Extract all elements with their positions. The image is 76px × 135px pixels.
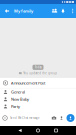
button[interactable]: Party <box>0 103 76 110</box>
staticText: You updated the group <box>23 71 57 75</box>
button[interactable]: Members <box>50 4 59 18</box>
button[interactable]: Voice message <box>58 110 65 126</box>
button[interactable]: General <box>0 88 76 96</box>
button[interactable]: Announcement Post <box>0 78 76 88</box>
staticText: My family <box>14 8 33 14</box>
button[interactable]: Notifications <box>59 4 67 18</box>
button[interactable]: Recents <box>50 126 62 135</box>
button[interactable]: Emoji <box>0 110 10 126</box>
staticText: General <box>11 89 25 95</box>
button[interactable]: More options <box>67 4 76 18</box>
button[interactable]: Back <box>0 4 14 18</box>
staticText: Announcement Post <box>11 80 45 86</box>
button[interactable]: Home <box>32 126 44 135</box>
button[interactable]: New Baby <box>0 96 76 103</box>
staticText: Today <box>34 65 41 69</box>
staticText: Party <box>11 104 20 109</box>
staticText: New Baby <box>11 97 29 102</box>
button[interactable]: Back <box>14 126 26 135</box>
button[interactable]: Camera <box>50 110 58 126</box>
button[interactable]: Send <box>65 110 76 126</box>
staticText: Send WeChat message <box>10 116 40 120</box>
